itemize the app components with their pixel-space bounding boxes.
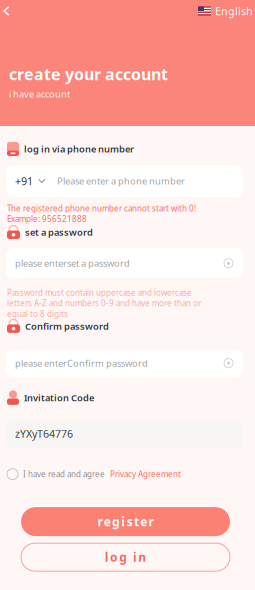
staticText: please enterset a password	[15, 257, 130, 269]
staticText: Privacy Agreement	[110, 469, 181, 479]
staticText: Example: 956521888	[7, 214, 87, 224]
button[interactable]: I have read and agree	[0, 448, 255, 480]
staticText: Password must contain uppercase and lowe…	[7, 287, 201, 319]
staticText: log in	[105, 549, 146, 565]
staticText: Invitation Code	[24, 391, 94, 404]
staticText: The registered phone number cannot start…	[7, 203, 196, 214]
button[interactable]: Back	[0, 2, 13, 20]
staticText: Please enter a phone number	[57, 175, 185, 187]
staticText: English	[215, 4, 253, 18]
staticText: zYXyT64776	[15, 426, 73, 441]
staticText: create your account	[9, 63, 168, 85]
button[interactable]: English	[198, 2, 255, 20]
staticText: Confirm password	[25, 320, 109, 332]
staticText: please enterConfirm password	[15, 357, 148, 369]
staticText: log in via phone number	[24, 143, 134, 155]
staticText: register	[97, 514, 154, 530]
button[interactable]: register	[21, 507, 230, 536]
staticText: I have read and agree	[23, 469, 105, 479]
staticText: +91	[15, 174, 33, 188]
staticText: set a password	[25, 226, 93, 238]
staticText: i have account	[9, 88, 70, 100]
button[interactable]: log in	[21, 543, 230, 571]
